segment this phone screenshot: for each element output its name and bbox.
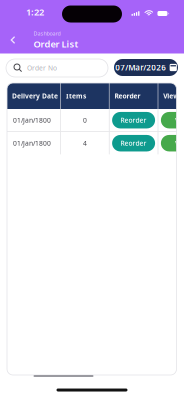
button[interactable]: 07/Mar/2026	[114, 59, 178, 76]
button[interactable]: View	[161, 112, 184, 128]
staticText: 4	[83, 139, 87, 148]
staticText: Items	[66, 92, 86, 100]
button[interactable]: Reorder	[112, 112, 155, 128]
staticText: Delivery Date	[12, 92, 58, 100]
staticText: 0	[83, 116, 87, 125]
staticText: Dashboard	[33, 30, 60, 37]
button[interactable]: Order No	[6, 59, 108, 77]
staticText: View	[175, 116, 184, 125]
staticText: View	[175, 139, 184, 148]
staticText: Order List	[33, 38, 78, 50]
staticText: 01/Jan/1800	[13, 116, 51, 125]
staticText: 07/Mar/2026	[115, 62, 166, 73]
button[interactable]: Back	[4, 31, 22, 49]
staticText: Reorder	[121, 116, 147, 125]
staticText: Reorder	[121, 139, 147, 148]
button[interactable]: View	[161, 135, 184, 151]
staticText: Order No	[27, 64, 57, 72]
button[interactable]: Reorder	[112, 135, 155, 151]
staticText: Reorder	[114, 92, 140, 100]
staticText: 1:22	[26, 6, 44, 18]
staticText: View	[163, 92, 179, 100]
staticText: 01/Jan/1800	[13, 139, 51, 148]
